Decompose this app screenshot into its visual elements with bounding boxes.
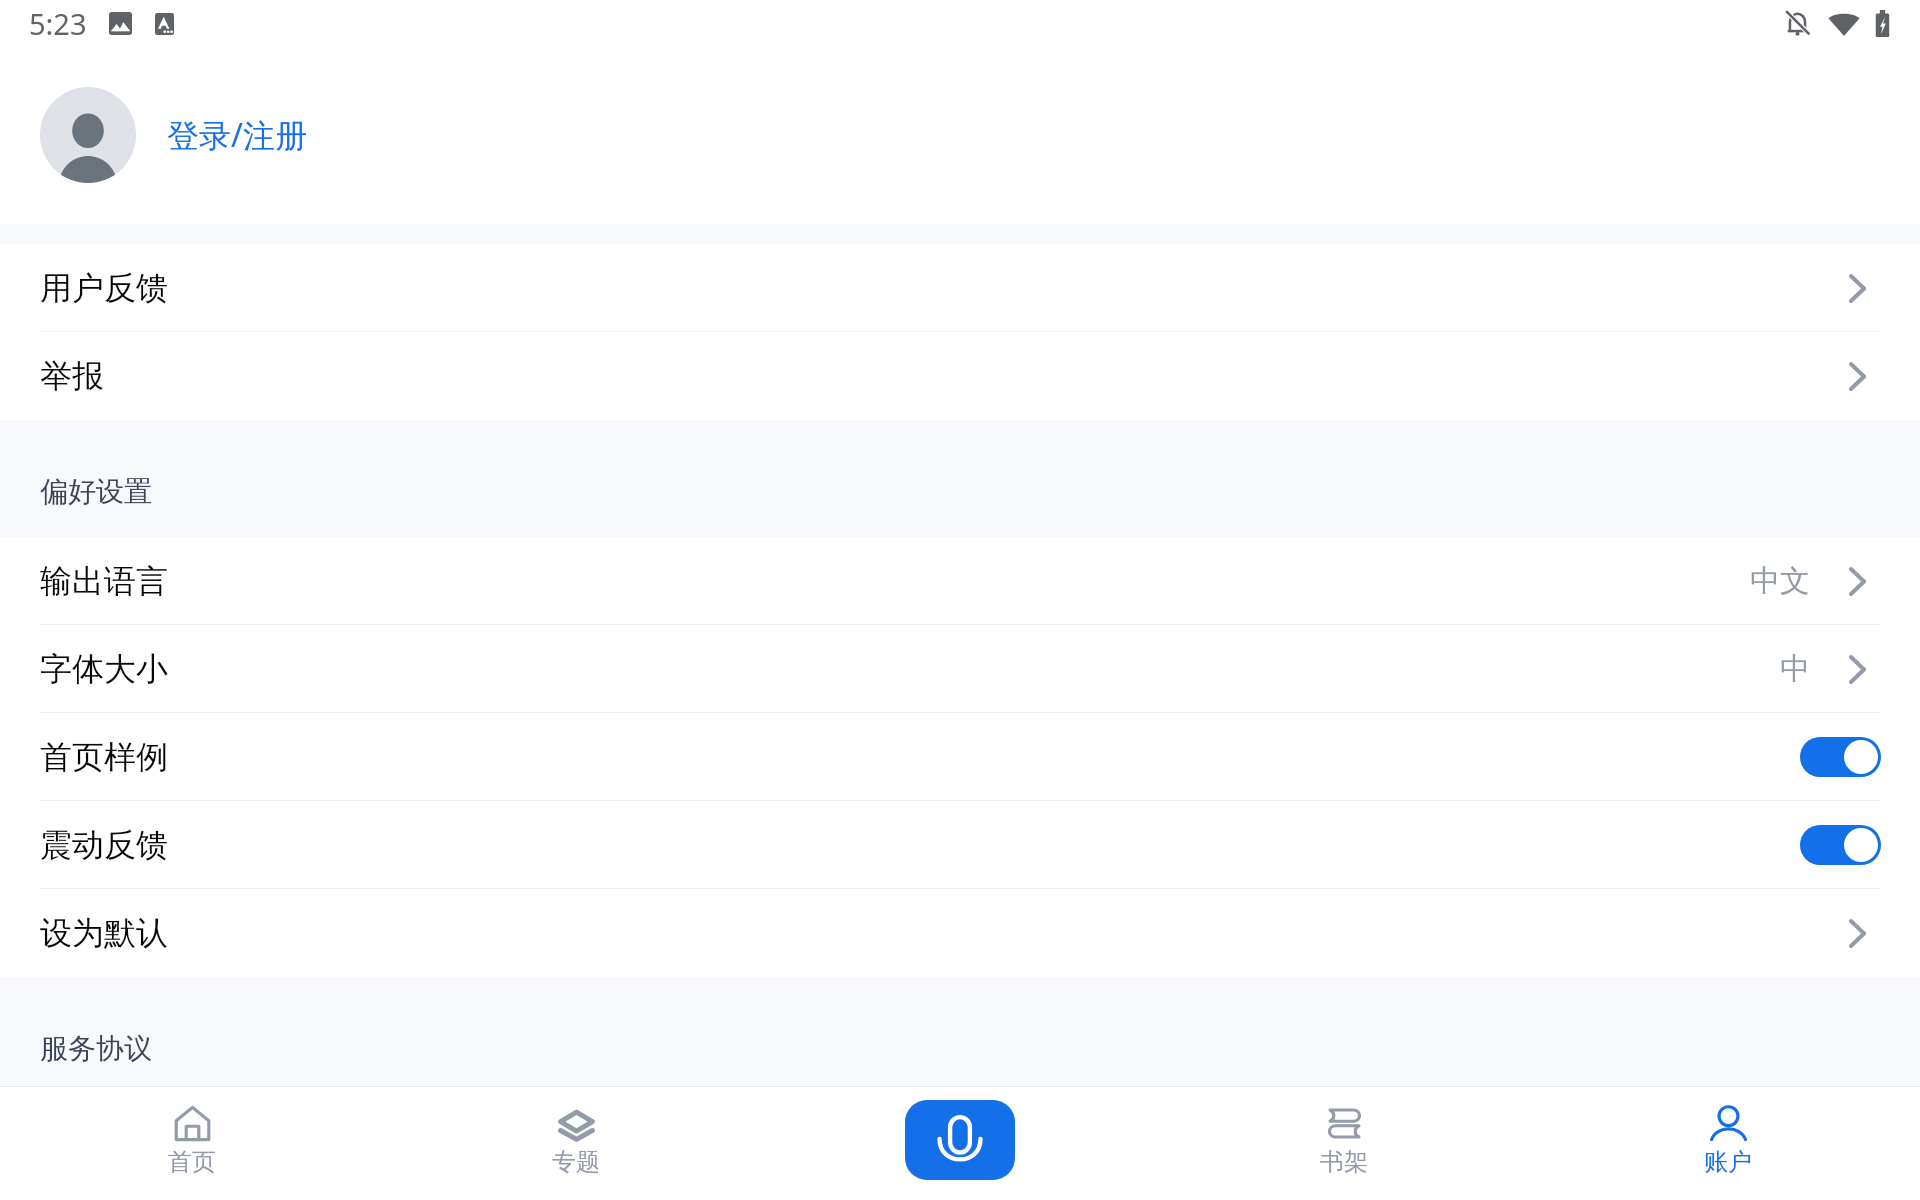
staticText: 偏好设置: [40, 474, 152, 509]
staticText: 书架: [1320, 1147, 1368, 1177]
staticText: 震动反馈: [40, 825, 168, 865]
staticText: 账户: [1704, 1147, 1752, 1177]
staticText: 中: [1780, 650, 1810, 688]
button[interactable]: 用户反馈: [0, 244, 1920, 332]
staticText: 登录/注册: [167, 113, 307, 157]
button[interactable]: 首页: [0, 1087, 384, 1200]
button[interactable]: 震动反馈: [0, 801, 1920, 889]
button[interactable]: 举报: [0, 332, 1920, 420]
staticText: 用户反馈: [40, 268, 168, 308]
button[interactable]: Voice input: [905, 1100, 1015, 1180]
staticText: 字体大小: [40, 649, 168, 689]
staticText: 首页样例: [40, 737, 168, 777]
button[interactable]: 输出语言: [0, 537, 1920, 625]
button[interactable]: 账户: [1536, 1087, 1920, 1200]
button[interactable]: 书架: [1152, 1087, 1536, 1200]
staticText: 中文: [1750, 562, 1810, 600]
button[interactable]: 首页样例: [0, 713, 1920, 801]
staticText: 专题: [552, 1147, 600, 1177]
button[interactable]: 专题: [384, 1087, 768, 1200]
staticText: 服务协议: [40, 1031, 152, 1066]
staticText: 举报: [40, 356, 104, 396]
staticText: 输出语言: [40, 561, 168, 601]
button[interactable]: 登录/注册: [0, 62, 1920, 224]
staticText: 设为默认: [40, 913, 168, 953]
staticText: 5:23: [29, 4, 87, 43]
staticText: 首页: [168, 1147, 216, 1177]
button[interactable]: 字体大小: [0, 625, 1920, 713]
button[interactable]: 设为默认: [0, 889, 1920, 977]
